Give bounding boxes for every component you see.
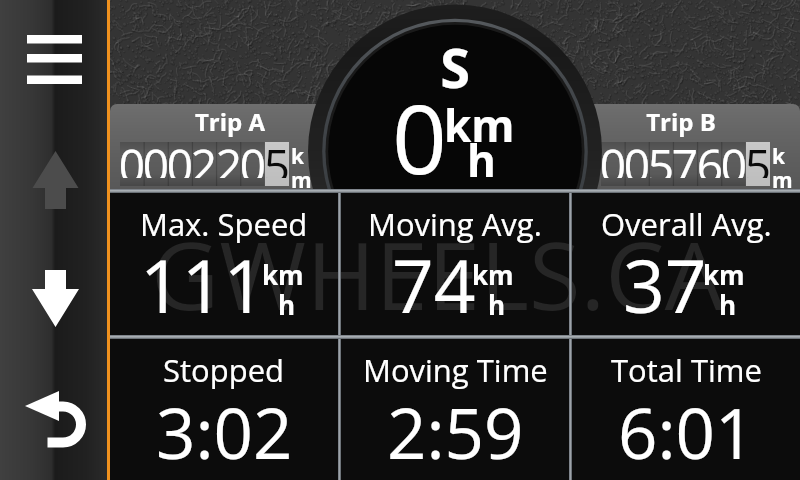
button[interactable]	[573, 104, 800, 189]
button[interactable]: Scroll down	[0, 230, 107, 360]
staticText: S	[355, 30, 555, 104]
staticText: 7	[667, 134, 703, 178]
staticText: 0	[138, 134, 174, 178]
button[interactable]: Moving Avg.	[341, 193, 569, 335]
staticText: 0	[114, 134, 150, 178]
staticText: k	[772, 142, 786, 171]
staticText: Max. Speed	[140, 203, 308, 245]
button[interactable]: Overall Avg.	[572, 193, 800, 335]
staticText: Total Time	[611, 349, 762, 391]
staticText: km	[262, 257, 304, 292]
staticText: 5	[740, 134, 776, 178]
button[interactable]: Menu	[0, 0, 107, 104]
staticText: 0	[595, 134, 631, 178]
staticText: 2	[211, 134, 247, 178]
staticText: 0	[162, 134, 198, 178]
staticText: km	[444, 95, 515, 155]
staticText: 37	[623, 235, 707, 334]
button[interactable]: Stopped	[110, 339, 338, 480]
staticText: 0	[716, 134, 752, 178]
staticText: h	[467, 130, 496, 189]
staticText: h	[719, 287, 737, 322]
staticText: GWHEELS.CA	[151, 210, 724, 338]
staticText: 5	[259, 134, 295, 178]
button[interactable]: Total Time	[572, 339, 800, 480]
staticText: km	[703, 257, 745, 292]
staticText: 111	[140, 235, 266, 334]
staticText: 5	[643, 134, 679, 178]
staticText: Stopped	[163, 349, 285, 391]
staticText: 0	[235, 134, 271, 178]
staticText: m	[291, 166, 312, 189]
button[interactable]: Max. Speed	[110, 193, 338, 335]
staticText: 6:01	[618, 385, 755, 479]
staticText: Trip A	[160, 105, 300, 138]
button[interactable]	[110, 104, 335, 189]
staticText: Trip B	[611, 105, 751, 138]
staticText: k	[291, 142, 305, 171]
staticText: 74	[392, 235, 476, 334]
button[interactable]: S	[110, 0, 800, 189]
staticText: 0	[619, 134, 655, 178]
staticText: Moving Avg.	[368, 203, 542, 245]
staticText: Moving Time	[363, 349, 548, 391]
staticText: 2	[186, 134, 222, 178]
button[interactable]: Moving Time	[341, 339, 569, 480]
staticText: 2:59	[387, 385, 524, 479]
staticText: h	[488, 287, 506, 322]
staticText: Overall Avg.	[601, 203, 772, 245]
button[interactable]: Scroll up	[0, 110, 107, 230]
staticText: km	[472, 257, 514, 292]
staticText: 0	[392, 71, 447, 189]
staticText: 6	[692, 134, 728, 178]
staticText: h	[278, 287, 296, 322]
staticText: 3:02	[156, 385, 293, 479]
button[interactable]: Back	[0, 360, 107, 480]
staticText: m	[772, 166, 793, 189]
